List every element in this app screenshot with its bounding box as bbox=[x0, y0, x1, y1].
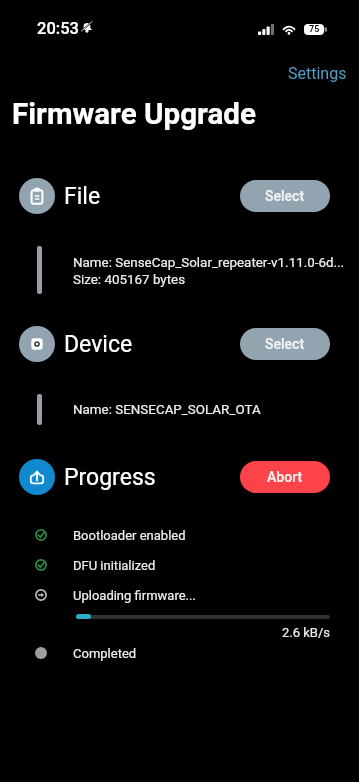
staticText: 2.6 kB/s bbox=[282, 625, 331, 640]
staticText: File bbox=[64, 183, 101, 210]
staticText: Size: 405167 bytes bbox=[73, 272, 186, 288]
staticText: Name: SenseCap_Solar_repeater-v1.11.0-6d… bbox=[73, 255, 345, 271]
staticText: Select bbox=[265, 336, 305, 352]
button[interactable]: File bbox=[19, 178, 55, 214]
button[interactable]: Abort bbox=[240, 461, 330, 493]
staticText: Firmware Upgrade bbox=[12, 97, 256, 132]
staticText: Completed bbox=[73, 646, 137, 661]
staticText: Abort bbox=[267, 469, 303, 485]
staticText: Name: SENSECAP_SOLAR_OTA bbox=[73, 402, 261, 418]
button[interactable]: Device bbox=[19, 326, 55, 362]
staticText: Bootloader enabled bbox=[73, 528, 186, 543]
button[interactable]: Progress bbox=[19, 459, 55, 495]
staticText: 20:53 bbox=[37, 19, 79, 38]
staticText: Progress bbox=[64, 464, 156, 491]
staticText: Select bbox=[265, 188, 305, 204]
staticText: 75 bbox=[309, 24, 320, 35]
button[interactable]: Select bbox=[240, 328, 330, 360]
staticText: DFU initialized bbox=[73, 558, 156, 573]
button[interactable]: Select bbox=[240, 180, 330, 212]
button[interactable]: Settings bbox=[284, 60, 351, 87]
staticText: Uploading firmware... bbox=[73, 588, 196, 603]
staticText: Settings bbox=[288, 64, 347, 83]
staticText: Device bbox=[64, 331, 133, 358]
